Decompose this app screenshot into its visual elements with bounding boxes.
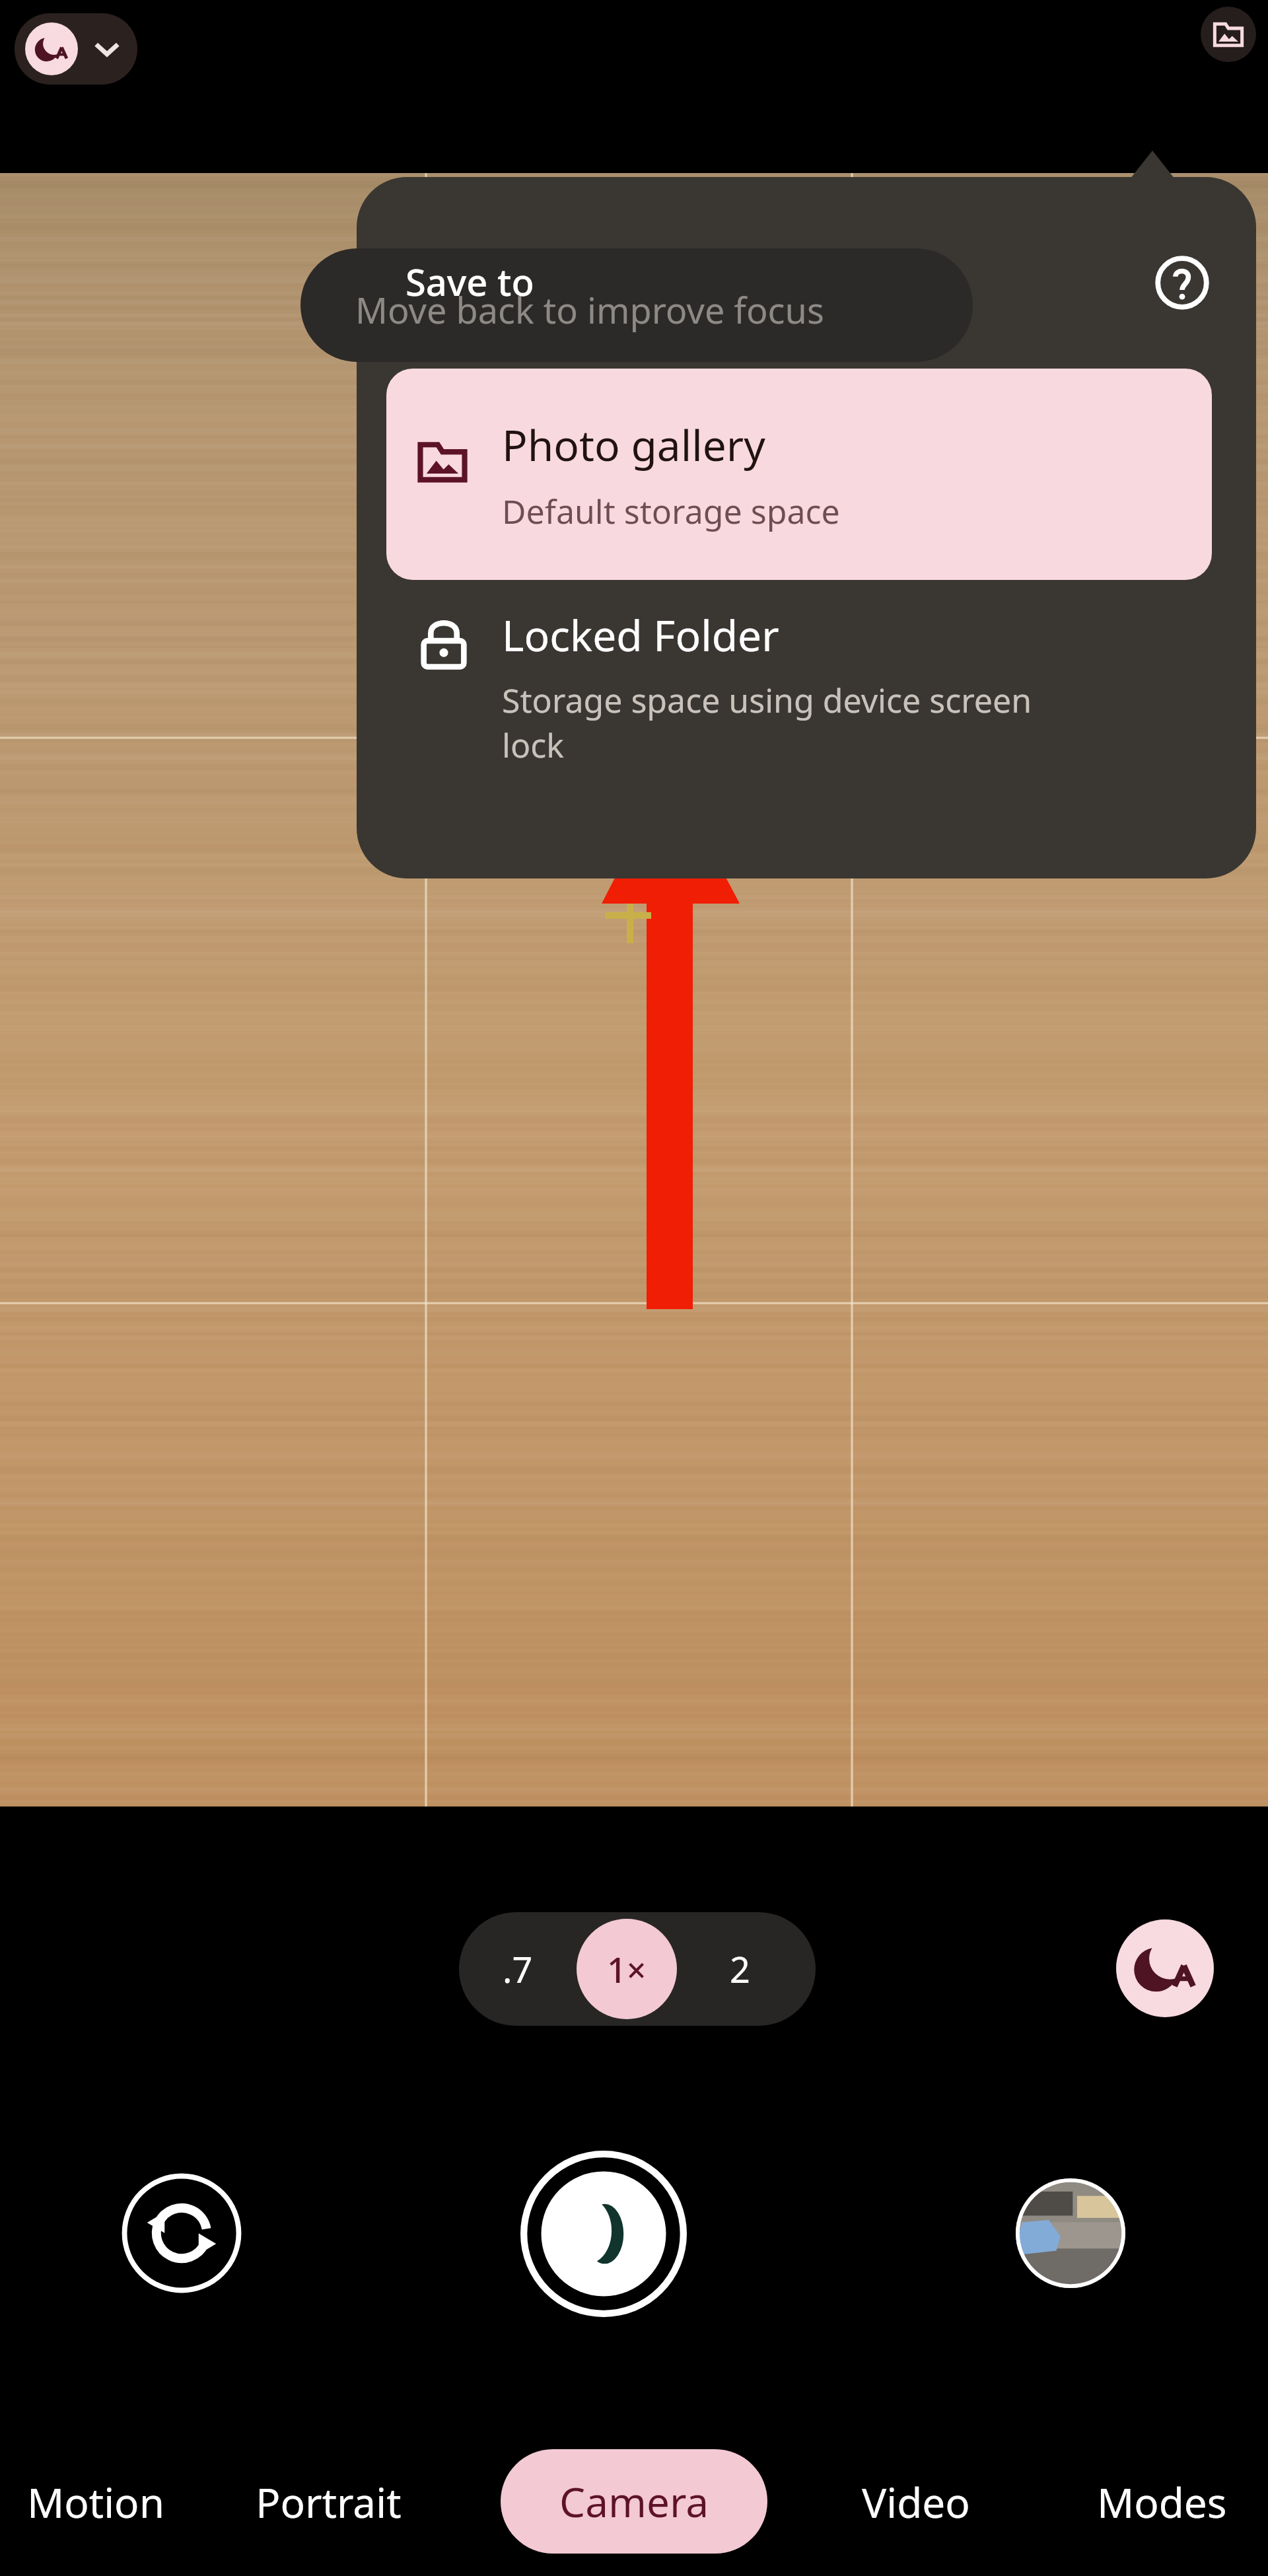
button[interactable]: 2	[677, 1912, 802, 2026]
staticText: Camera	[559, 2474, 709, 2529]
staticText: 1×	[607, 1946, 647, 1993]
staticText: Move back to improve focus	[355, 285, 824, 334]
staticText: Portrait	[256, 2474, 402, 2530]
button[interactable]: Motion	[0, 2472, 192, 2532]
button[interactable]: Camera	[501, 2449, 767, 2554]
button[interactable]: Portrait	[219, 2472, 437, 2532]
staticText: Photo gallery	[502, 416, 765, 474]
staticText: Locked Folder	[502, 606, 779, 664]
staticText: Motion	[27, 2474, 164, 2530]
button[interactable]: 1×	[577, 1919, 677, 2019]
staticText: Default storage space	[502, 489, 840, 534]
button[interactable]: Take photo	[520, 2151, 687, 2317]
button[interactable]: Video	[820, 2472, 1012, 2532]
button[interactable]: Open gallery	[1016, 2178, 1125, 2288]
button[interactable]: Modes	[1055, 2472, 1268, 2532]
button[interactable]: Help	[1152, 252, 1213, 313]
staticText: .7	[503, 1945, 533, 1993]
button[interactable]: .7	[459, 1912, 577, 2026]
button[interactable]: Photo gallery	[386, 369, 1212, 580]
staticText: Save to	[405, 256, 534, 306]
staticText: Modes	[1097, 2474, 1227, 2530]
staticText: Storage space using device screen lock	[502, 678, 1032, 768]
button[interactable]: Night sight auto	[1116, 1919, 1214, 2017]
button[interactable]: Save location	[1201, 7, 1256, 62]
button[interactable]: Switch camera	[120, 2172, 243, 2295]
button[interactable]: Night sight auto settings	[15, 13, 137, 85]
staticText: Video	[862, 2474, 970, 2530]
button[interactable]: Locked Folder	[386, 597, 1212, 815]
staticText: 2	[730, 1945, 750, 1993]
